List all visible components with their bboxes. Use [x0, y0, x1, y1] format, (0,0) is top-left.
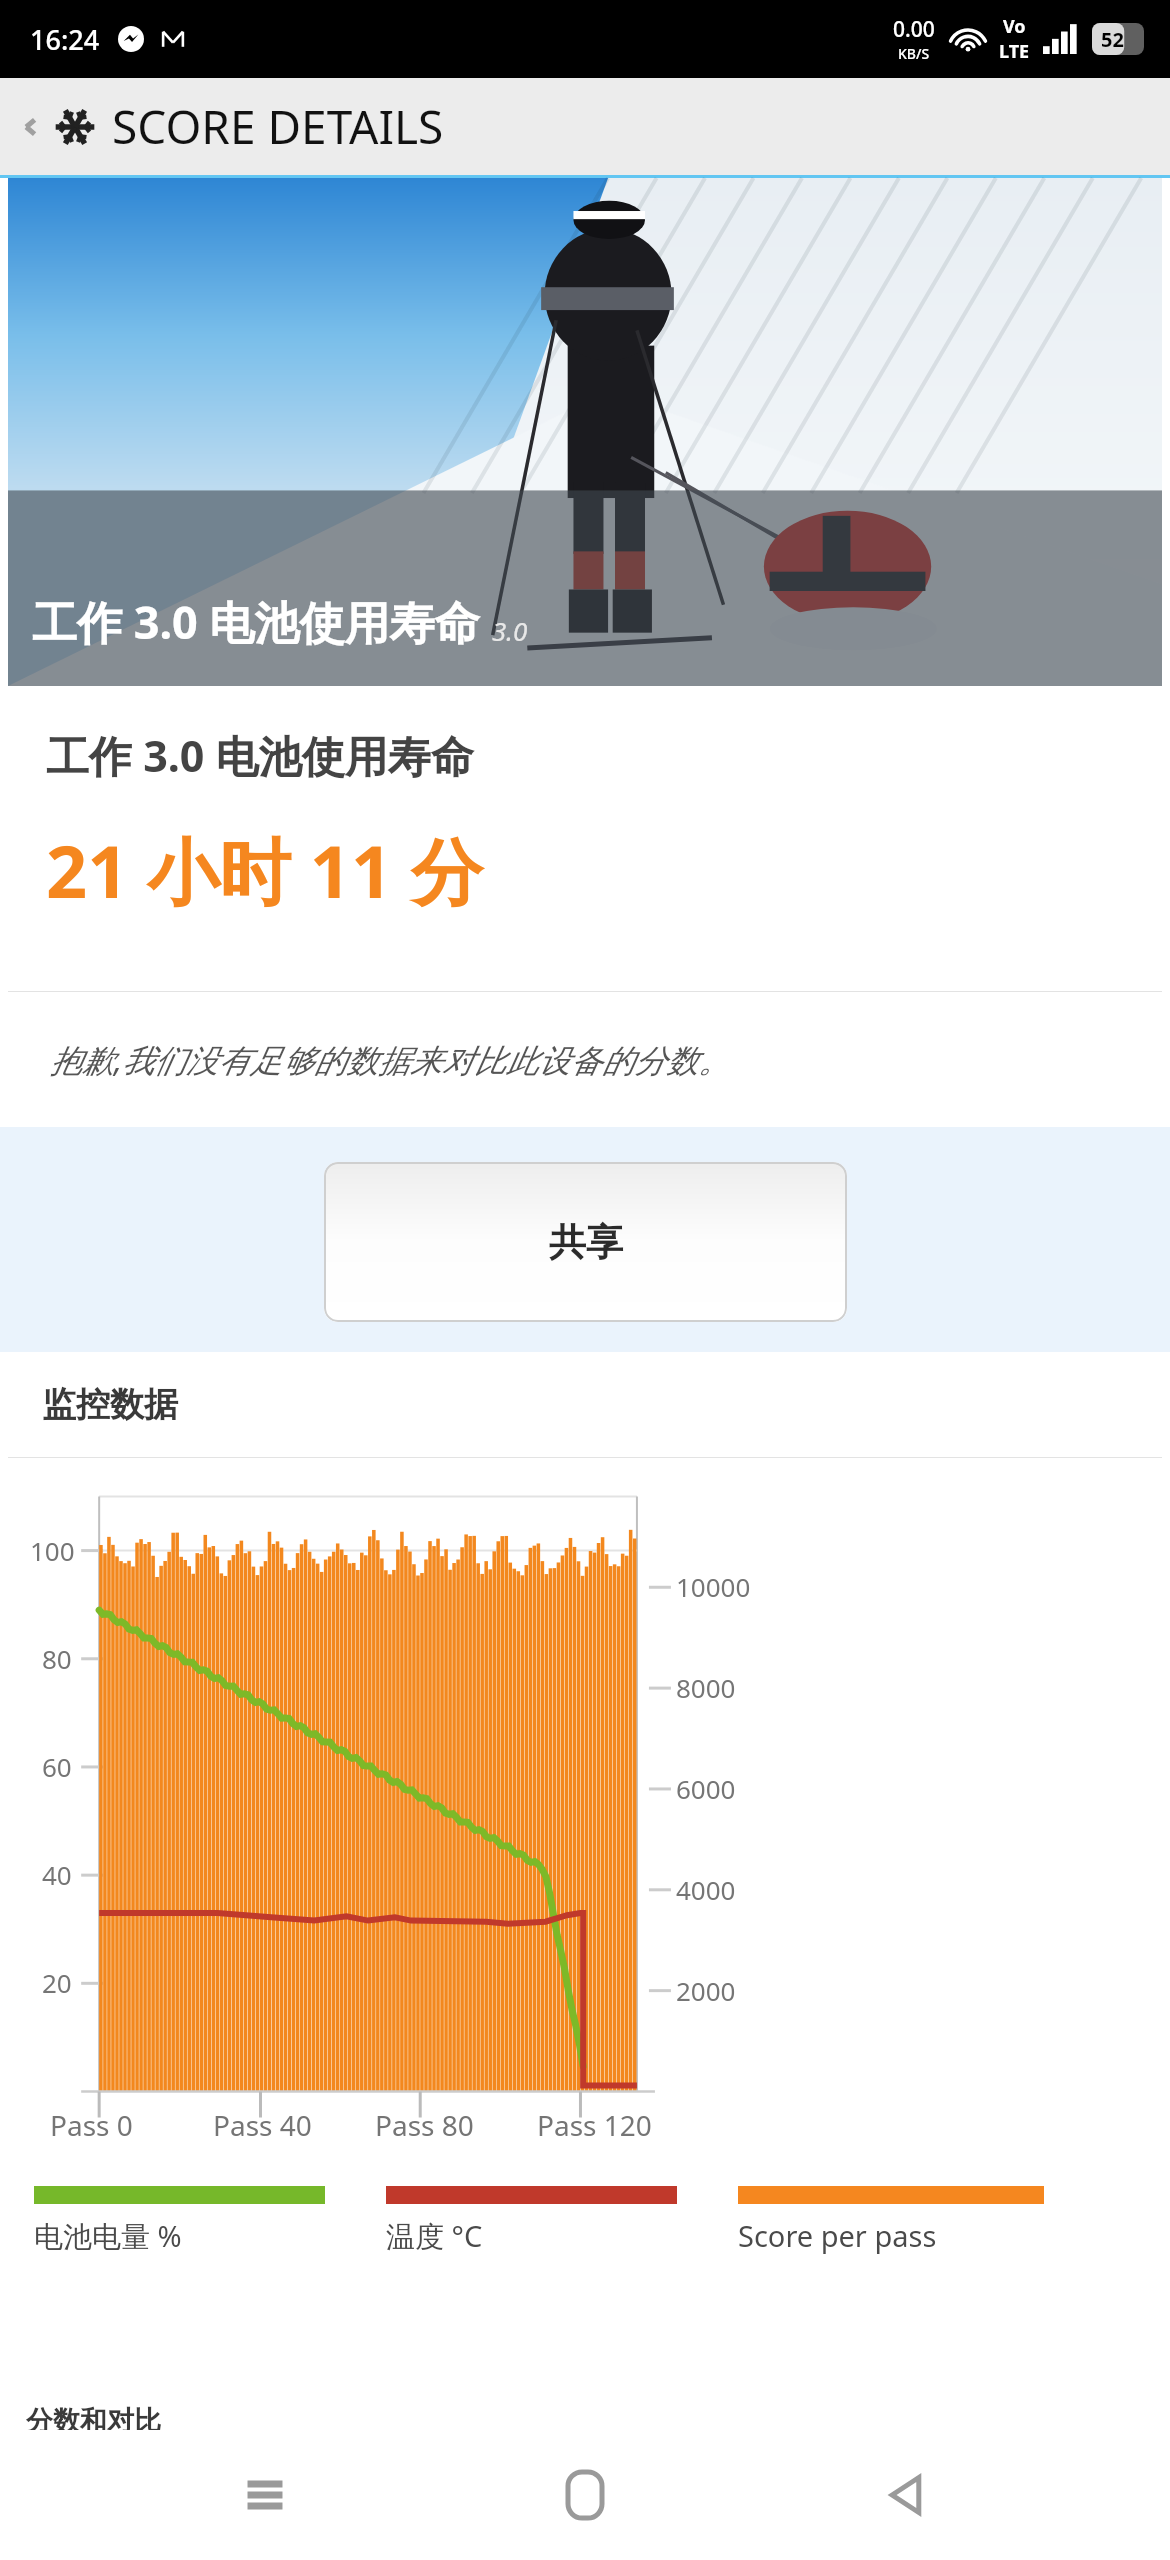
- staticText: 100: [30, 1533, 75, 1568]
- button[interactable]: 共享: [324, 1162, 847, 1322]
- staticText: 60: [42, 1749, 72, 1784]
- button[interactable]: 抱歉,我们没有足够的数据来对比此设备的分数。: [8, 992, 1162, 1127]
- staticText: 10000: [676, 1569, 751, 1604]
- staticText: 分数和对比: [26, 2404, 161, 2430]
- staticText: 80: [42, 1641, 72, 1676]
- other: Back: [16, 112, 46, 142]
- staticText: Pass 0: [50, 2106, 133, 2144]
- staticText: 温度 °C: [386, 2216, 483, 2256]
- staticText: 抱歉,我们没有足够的数据来对比此设备的分数。: [50, 1038, 731, 1082]
- staticText: 20: [42, 1965, 72, 2000]
- staticText: LTE: [999, 39, 1030, 64]
- button[interactable]: Back: [850, 2440, 960, 2550]
- staticText: 2000: [676, 1973, 736, 2008]
- staticText: 电池电量 %: [34, 2216, 182, 2256]
- staticText: 8000: [676, 1670, 736, 1705]
- staticText: Pass 120: [537, 2106, 652, 2144]
- staticText: Pass 40: [213, 2106, 312, 2144]
- staticText: 工作 3.0 电池使用寿命: [46, 726, 474, 785]
- staticText: 工作 3.0 电池使用寿命: [32, 591, 480, 652]
- staticText: Score per pass: [738, 2216, 937, 2255]
- button[interactable]: 工作 3.0 电池使用寿命: [8, 178, 1162, 686]
- staticText: 0.00: [893, 15, 935, 44]
- staticText: 52: [1101, 26, 1124, 53]
- staticText: 40: [42, 1857, 72, 1892]
- staticText: 共享: [549, 1219, 623, 1266]
- staticText: 监控数据: [42, 1383, 178, 1426]
- button[interactable]: Home: [530, 2440, 640, 2550]
- staticText: 3.0: [492, 613, 528, 648]
- staticText: 4000: [676, 1872, 736, 1907]
- button[interactable]: Recents: [210, 2440, 320, 2550]
- staticText: KB/S: [898, 44, 930, 63]
- staticText: Pass 80: [375, 2106, 474, 2144]
- staticText: SCORE DETAILS: [112, 95, 444, 158]
- staticText: 21 小时 11 分: [46, 821, 483, 919]
- staticText: Vo: [1003, 14, 1026, 39]
- button[interactable]: 工作 3.0 电池使用寿命: [8, 686, 1162, 991]
- staticText: 6000: [676, 1771, 736, 1806]
- staticText: 16:24: [30, 21, 100, 58]
- button[interactable]: Back: [0, 78, 1170, 175]
